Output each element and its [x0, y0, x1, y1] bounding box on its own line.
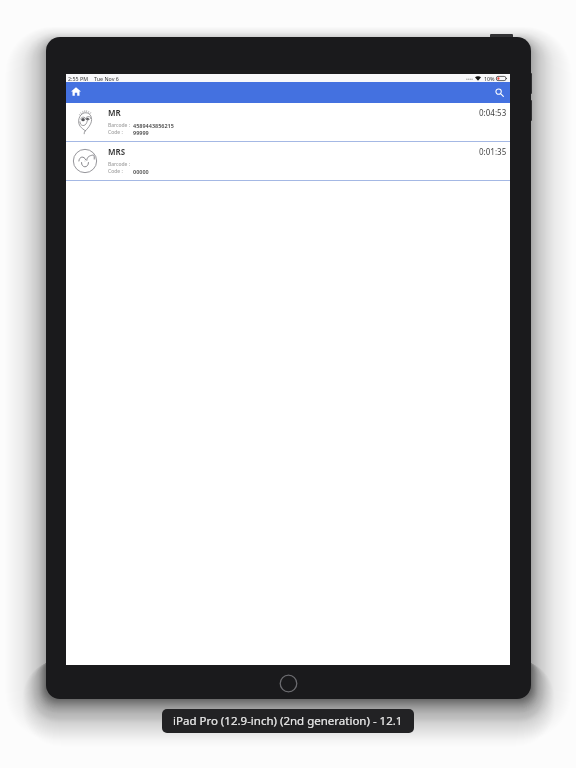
staticText: 10%: [484, 75, 495, 82]
staticText: Code :: [108, 168, 133, 175]
button[interactable]: iPad Pro (12.9-inch) (2nd generation) - …: [162, 709, 414, 733]
staticText: 00000: [133, 168, 149, 175]
staticText: Barcode :: [108, 122, 133, 129]
button[interactable]: Home button: [279, 674, 298, 693]
staticText: 99999: [133, 129, 149, 136]
staticText: 0:01:35: [479, 146, 507, 157]
staticText: 0:04:53: [479, 107, 507, 118]
staticText: 4589443856215: [133, 122, 174, 129]
button[interactable]: Search: [490, 83, 509, 102]
staticText: Code :: [108, 129, 133, 136]
staticText: Barcode :: [108, 161, 133, 168]
staticText: Tue Nov 6: [94, 75, 119, 82]
button[interactable]: Home: [66, 82, 85, 101]
button[interactable]: MRS: [66, 142, 510, 180]
staticText: MRS: [108, 146, 126, 157]
staticText: iPad Pro (12.9-inch) (2nd generation) - …: [173, 713, 403, 729]
staticText: 2:55 PM: [68, 75, 89, 82]
staticText: MR: [108, 107, 121, 118]
button[interactable]: MR: [66, 103, 510, 141]
